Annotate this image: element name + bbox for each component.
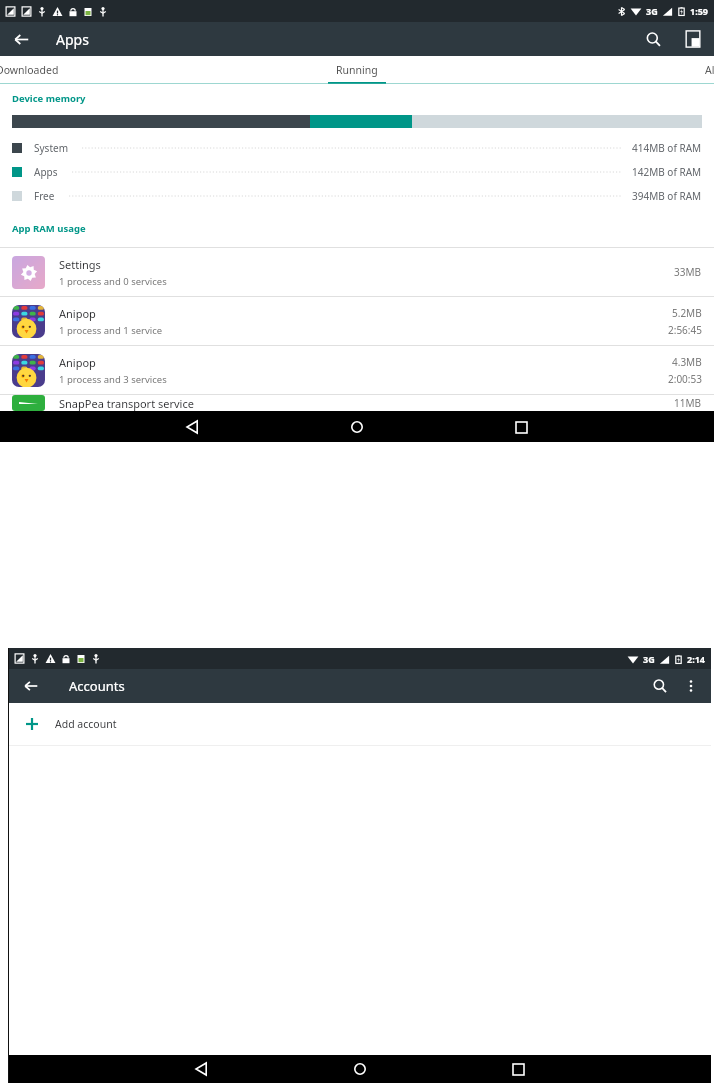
staticText: 5.2MB <box>672 306 702 320</box>
button[interactable]: Back <box>6 24 36 54</box>
button[interactable]: Anipop <box>0 297 714 345</box>
button[interactable]: Back <box>180 414 206 440</box>
staticText: 414MB of RAM <box>632 141 702 155</box>
staticText: 4.3MB <box>672 355 702 369</box>
staticText: Apps <box>34 165 58 179</box>
staticText: 1:59 <box>690 5 708 17</box>
staticText: Accounts <box>69 677 125 695</box>
staticText: 142MB of RAM <box>632 165 702 179</box>
staticText: 2:56:45 <box>668 323 702 337</box>
button[interactable]: Home <box>344 414 370 440</box>
staticText: 2:14 <box>687 653 705 665</box>
button[interactable]: Home <box>347 1056 373 1082</box>
staticText: 1 process and 1 service <box>59 324 163 337</box>
button[interactable]: System <box>0 136 714 160</box>
staticText: 394MB of RAM <box>632 189 702 203</box>
staticText: Apps <box>56 30 89 49</box>
staticText: System <box>34 141 68 155</box>
button[interactable]: Recents <box>505 1056 531 1082</box>
button[interactable]: All <box>705 63 714 77</box>
staticText: 33MB <box>674 265 702 279</box>
staticText: Add account <box>55 717 117 731</box>
button[interactable]: Running <box>336 63 378 77</box>
button[interactable]: Free <box>0 184 714 208</box>
button[interactable]: Back <box>17 672 45 700</box>
staticText: 11MB <box>674 396 702 410</box>
staticText: Free <box>34 189 55 203</box>
staticText: 1 process and 0 services <box>59 275 167 288</box>
staticText: 2:00:53 <box>668 372 702 386</box>
staticText: Anipop <box>59 306 96 321</box>
button[interactable]: Downloaded <box>0 63 59 77</box>
staticText: Running <box>336 63 378 77</box>
staticText: Anipop <box>59 355 96 370</box>
button[interactable]: Recents <box>508 414 534 440</box>
staticText: Settings <box>59 257 101 272</box>
button[interactable]: SnapPea transport service <box>0 395 714 411</box>
staticText: SnapPea transport service <box>59 396 194 411</box>
button[interactable]: Search <box>647 673 673 699</box>
button[interactable]: Search <box>640 26 666 52</box>
staticText: Device memory <box>12 92 86 105</box>
button[interactable]: Settings <box>0 248 714 296</box>
staticText: App RAM usage <box>12 222 86 235</box>
button[interactable]: Add account <box>9 703 711 745</box>
button[interactable]: Apps <box>0 160 714 184</box>
button[interactable]: More options <box>679 674 703 698</box>
staticText: 3G <box>643 653 655 665</box>
button[interactable]: Show on device <box>680 26 706 52</box>
staticText: 3G <box>646 5 658 17</box>
button[interactable]: Anipop <box>0 346 714 394</box>
staticText: 1 process and 3 services <box>59 373 167 386</box>
button[interactable]: Back <box>189 1056 215 1082</box>
